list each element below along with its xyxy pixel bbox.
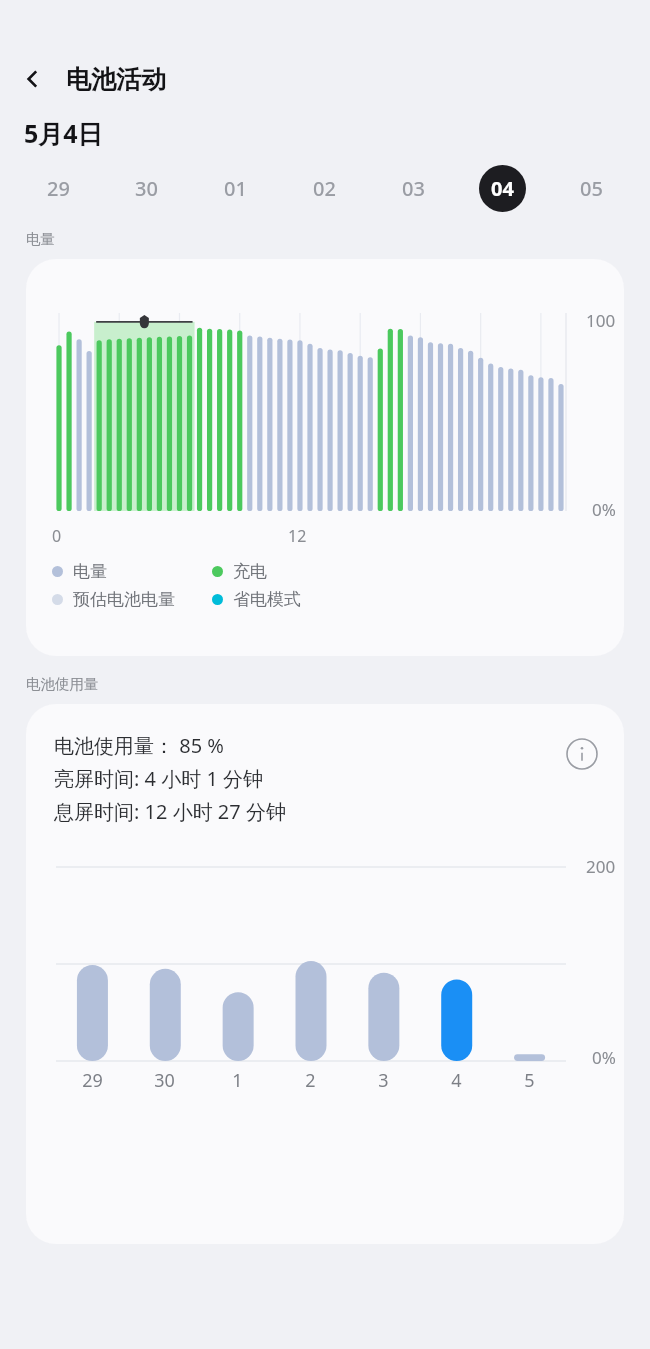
staticText: 电池使用量： 85 %	[54, 732, 224, 759]
button[interactable]: 100	[26, 259, 624, 656]
button[interactable]: 02	[280, 162, 369, 214]
staticText: 30	[154, 1068, 175, 1093]
staticText: 12	[288, 525, 307, 547]
staticText: 5月4日	[24, 116, 103, 150]
button[interactable]: Back	[10, 56, 56, 102]
staticText: 2	[305, 1068, 316, 1093]
staticText: 0%	[592, 498, 616, 521]
staticText: 3	[378, 1068, 389, 1093]
button[interactable]: 30	[102, 162, 191, 214]
staticText: 电量	[73, 561, 107, 582]
staticText: 100	[586, 309, 616, 332]
staticText: 电池活动	[66, 64, 166, 95]
staticText: 30	[135, 175, 158, 202]
staticText: 充电	[233, 561, 267, 582]
staticText: 1	[232, 1068, 243, 1093]
button[interactable]: Info	[562, 734, 602, 774]
staticText: 亮屏时间: 4 小时 1 分钟	[54, 765, 264, 792]
staticText: 省电模式	[233, 589, 301, 610]
staticText: 电池使用量	[26, 675, 99, 693]
staticText: 4	[451, 1068, 462, 1093]
staticText: 息屏时间: 12 小时 27 分钟	[54, 798, 286, 825]
staticText: 04	[491, 175, 514, 202]
staticText: 01	[224, 175, 247, 202]
staticText: 电量	[26, 230, 55, 248]
staticText: 02	[313, 175, 336, 202]
button[interactable]: 电池使用量： 85 %	[26, 704, 624, 1244]
staticText: 03	[402, 175, 425, 202]
staticText: 29	[82, 1068, 103, 1093]
staticText: 0%	[592, 1046, 616, 1069]
staticText: 5	[524, 1068, 535, 1093]
staticText: 0	[52, 525, 62, 547]
staticText: 05	[580, 175, 603, 202]
staticText: 200	[586, 855, 616, 878]
staticText: 29	[47, 175, 70, 202]
button[interactable]: 01	[191, 162, 280, 214]
button[interactable]: 04	[458, 162, 547, 214]
button[interactable]: 03	[369, 162, 458, 214]
button[interactable]: 05	[547, 162, 636, 214]
button[interactable]: 29	[14, 162, 102, 214]
staticText: 预估电池电量	[73, 589, 175, 610]
